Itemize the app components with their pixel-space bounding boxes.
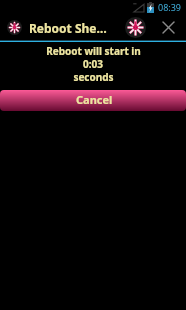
staticText: 0:03 xyxy=(83,57,103,70)
button[interactable]: Close xyxy=(150,14,186,40)
button[interactable]: Reboot now xyxy=(120,14,150,40)
staticText: 08:39 xyxy=(158,1,182,13)
staticText: seconds xyxy=(73,70,114,83)
staticText: Cancel xyxy=(76,92,113,107)
button[interactable]: Cancel xyxy=(0,90,186,111)
staticText: Reboot She… xyxy=(29,20,120,36)
staticText: Reboot will start in xyxy=(46,44,141,57)
